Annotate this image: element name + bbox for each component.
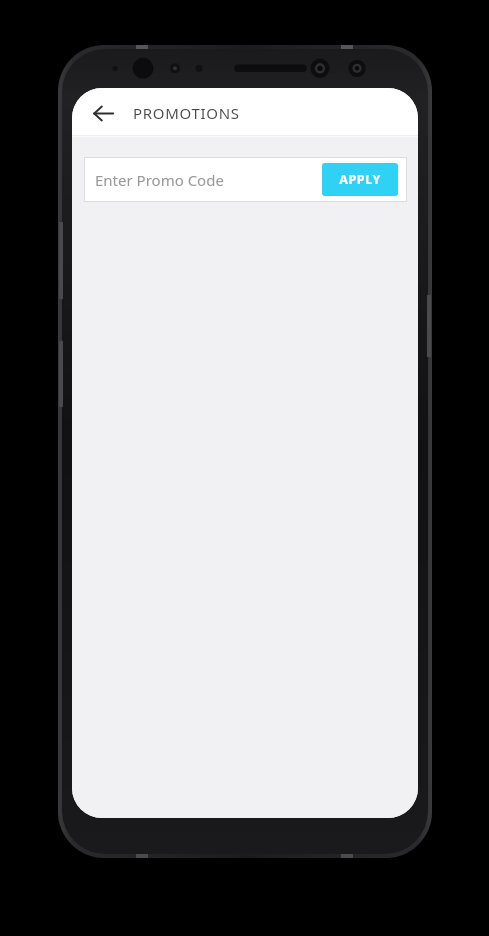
button[interactable]: Enter Promo Code bbox=[84, 157, 322, 202]
button[interactable]: Back bbox=[83, 93, 123, 133]
staticText: Enter Promo Code bbox=[95, 170, 224, 190]
button[interactable]: APPLY bbox=[322, 163, 398, 196]
staticText: APPLY bbox=[339, 171, 381, 188]
staticText: PROMOTIONS bbox=[133, 103, 240, 123]
